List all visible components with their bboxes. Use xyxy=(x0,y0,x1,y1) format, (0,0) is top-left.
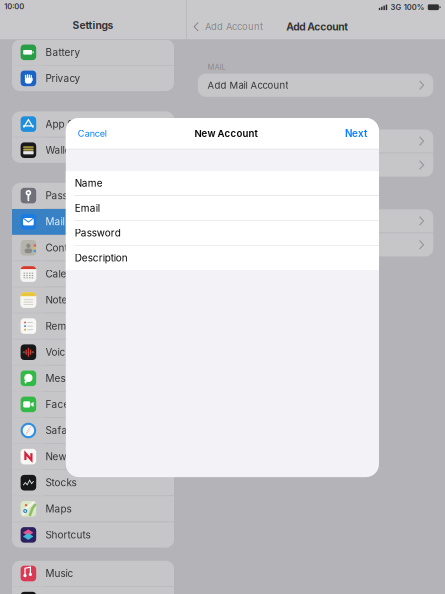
staticText: Add Outlook Account xyxy=(207,239,305,250)
staticText: Settings xyxy=(72,19,113,31)
button[interactable]: Messages xyxy=(12,366,174,391)
staticText: Safari xyxy=(46,424,74,436)
button[interactable]: News xyxy=(12,444,174,469)
staticText: Reminders xyxy=(46,320,96,332)
button[interactable]: Passwords xyxy=(12,183,174,208)
button[interactable]: Add Exchange Account xyxy=(198,129,433,153)
staticText: Privacy xyxy=(46,72,81,84)
staticText: Add Account xyxy=(286,20,348,33)
staticText: Next xyxy=(345,127,367,139)
staticText: Email xyxy=(75,202,100,214)
button[interactable]: Add Outlook Account xyxy=(198,233,433,256)
button[interactable]: FaceTime xyxy=(12,392,174,417)
staticText: Cancel xyxy=(78,128,107,139)
button[interactable]: Add Google Account xyxy=(198,153,433,177)
button[interactable]: Add Mail Account xyxy=(198,74,433,97)
staticText: Add Yahoo Account xyxy=(207,215,299,227)
button[interactable]: Mail xyxy=(12,209,174,234)
button[interactable]: Music xyxy=(12,561,174,586)
staticText: MAIL xyxy=(207,62,225,71)
staticText: Messages xyxy=(46,372,94,384)
staticText: Wallet xyxy=(46,144,74,156)
staticText: Contacts xyxy=(46,242,88,254)
staticText: Calendar xyxy=(46,268,89,280)
button[interactable]: Wallet xyxy=(12,137,174,163)
staticText: Add Account xyxy=(205,21,263,32)
staticText: Music xyxy=(46,567,74,579)
staticText: Passwords xyxy=(46,190,97,202)
button[interactable]: Privacy xyxy=(12,66,174,91)
button[interactable]: Safari xyxy=(12,418,174,443)
button[interactable]: Add Account xyxy=(193,17,275,37)
staticText: Name xyxy=(75,177,103,189)
staticText: Mail xyxy=(46,216,65,228)
staticText: Notes xyxy=(46,294,73,306)
button[interactable]: tv xyxy=(12,587,174,594)
staticText: 100% xyxy=(404,3,425,12)
staticText: Description xyxy=(75,252,128,264)
button[interactable]: Maps xyxy=(12,496,174,521)
button[interactable]: Next xyxy=(345,119,379,147)
staticText: Maps xyxy=(46,503,72,515)
staticText: Stocks xyxy=(46,477,77,489)
button[interactable]: Stocks xyxy=(12,470,174,495)
staticText: Shortcuts xyxy=(46,529,91,541)
staticText: News xyxy=(46,451,72,463)
button[interactable]: Cancel xyxy=(66,120,107,147)
button[interactable]: Battery xyxy=(12,40,174,65)
button[interactable]: Voice Memos xyxy=(12,339,174,365)
staticText: Battery xyxy=(46,46,81,58)
staticText: Add Mail Account xyxy=(207,79,288,91)
button[interactable]: Shortcuts xyxy=(12,522,174,548)
button[interactable]: Notes xyxy=(12,287,174,313)
staticText: New Account xyxy=(194,128,257,139)
staticText: FaceTime xyxy=(46,398,92,410)
button[interactable]: Reminders xyxy=(12,313,174,339)
staticText: Voice Memos xyxy=(46,346,110,358)
staticText: 3G xyxy=(390,3,401,12)
staticText: Password xyxy=(75,227,121,239)
button[interactable]: Calendar xyxy=(12,261,174,287)
button[interactable]: App Store xyxy=(12,111,174,137)
button[interactable]: Add Yahoo Account xyxy=(198,209,433,232)
staticText: App Store xyxy=(46,118,93,130)
button[interactable]: Contacts xyxy=(12,235,174,260)
staticText: 10:00 xyxy=(4,2,24,11)
staticText: Add Exchange Account xyxy=(207,135,315,147)
